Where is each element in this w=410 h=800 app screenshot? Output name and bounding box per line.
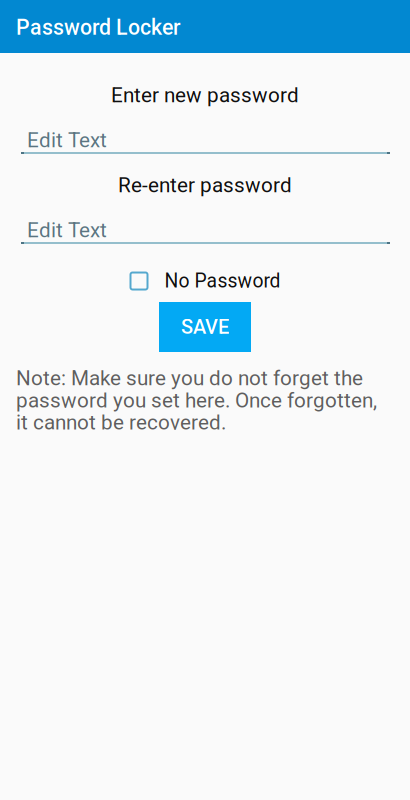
staticText: SAVE [181, 315, 229, 339]
staticText: Re-enter password [118, 173, 292, 197]
button[interactable]: Edit Text [21, 218, 390, 244]
button[interactable]: Edit Text [21, 128, 390, 154]
staticText: Edit Text [27, 218, 107, 242]
staticText: Password Locker [16, 15, 181, 40]
button[interactable]: No Password [129, 263, 280, 299]
staticText: Edit Text [27, 128, 107, 152]
staticText: No Password [164, 270, 280, 292]
staticText: Enter new password [111, 83, 299, 107]
button[interactable]: SAVE [159, 302, 251, 352]
staticText: Note: Make sure you do not forget the pa… [16, 366, 377, 435]
